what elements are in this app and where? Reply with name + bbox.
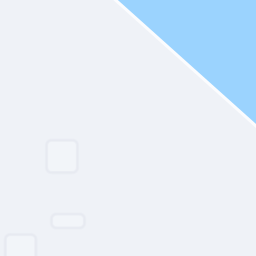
button[interactable]: Icon placeholder bbox=[5, 234, 36, 256]
button[interactable]: Label placeholder bbox=[51, 214, 85, 228]
button[interactable]: Icon placeholder bbox=[46, 140, 77, 173]
